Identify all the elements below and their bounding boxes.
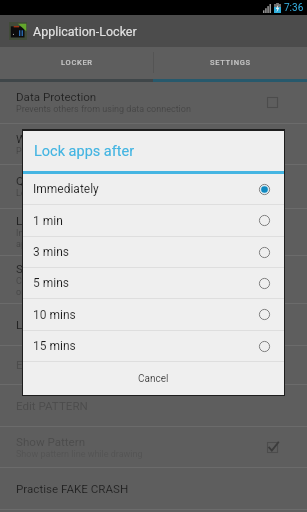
button[interactable]: Quick Lock	[0, 165, 307, 209]
staticText: Application-Locker	[33, 24, 137, 39]
staticText: 3 mins	[33, 245, 259, 259]
staticText: 7:36	[284, 2, 304, 14]
staticText: Lock New Apps	[16, 214, 97, 228]
button[interactable]: 15 mins	[23, 331, 284, 362]
button[interactable]: Security Question	[0, 256, 307, 304]
other: Checked	[267, 442, 278, 453]
staticText: Practise FAKE CRASH	[16, 482, 129, 496]
other: Unchecked	[267, 97, 278, 108]
staticText: SETTINGS	[210, 58, 251, 67]
staticText: Photo capture on wrong attempts	[16, 146, 151, 157]
button[interactable]: Wrong Attempts	[0, 124, 307, 165]
button[interactable]: Edit PATTERN	[0, 385, 307, 427]
other: App icon	[9, 22, 27, 40]
staticText: Change the security question	[16, 276, 133, 287]
staticText: 15 mins	[33, 339, 259, 353]
button[interactable]: LOCKER	[0, 47, 153, 82]
staticText: Data Protection	[16, 90, 97, 104]
staticText: Quick Lock	[16, 174, 73, 188]
staticText: apps on the device	[16, 239, 91, 250]
button[interactable]: Data Protection	[0, 82, 307, 124]
staticText: LOCKER	[61, 58, 93, 67]
staticText: Cancel	[138, 373, 169, 385]
button[interactable]: Lock Mode	[0, 304, 307, 346]
staticText: Immediately	[33, 182, 259, 196]
staticText: Show pattern line while drawing	[16, 449, 143, 460]
button[interactable]: 5 mins	[23, 268, 284, 299]
button[interactable]: Show Pattern	[0, 427, 307, 468]
button[interactable]: SETTINGS	[153, 47, 307, 82]
staticText: Lock apps after a certain interval	[16, 188, 147, 199]
staticText: 10 mins	[33, 308, 259, 322]
staticText: 5 mins	[33, 276, 259, 290]
button[interactable]: Immediately	[23, 174, 284, 205]
staticText: Show Pattern	[16, 435, 86, 449]
button[interactable]: 1 min	[23, 205, 284, 237]
staticText: Enable Service	[16, 358, 92, 372]
button[interactable]: 10 mins	[23, 299, 284, 331]
staticText: Security Question	[16, 262, 107, 276]
staticText: or the answer	[16, 287, 71, 298]
button[interactable]: 3 mins	[23, 237, 284, 268]
button[interactable]: Lock New Apps	[0, 209, 307, 256]
staticText: Instantly lock newly installed	[16, 228, 131, 239]
staticText: Wrong Attempts	[16, 132, 101, 146]
staticText: Prevents others from using data connecti…	[16, 104, 191, 115]
staticText: Edit PATTERN	[16, 399, 88, 413]
button[interactable]: Enable Service	[0, 346, 307, 385]
staticText: 1 min	[33, 214, 259, 228]
staticText: Lock Mode	[16, 318, 74, 332]
button[interactable]: Cancel	[23, 362, 284, 395]
button[interactable]: Practise FAKE CRASH	[0, 468, 307, 510]
staticText: Lock apps after	[34, 143, 135, 160]
